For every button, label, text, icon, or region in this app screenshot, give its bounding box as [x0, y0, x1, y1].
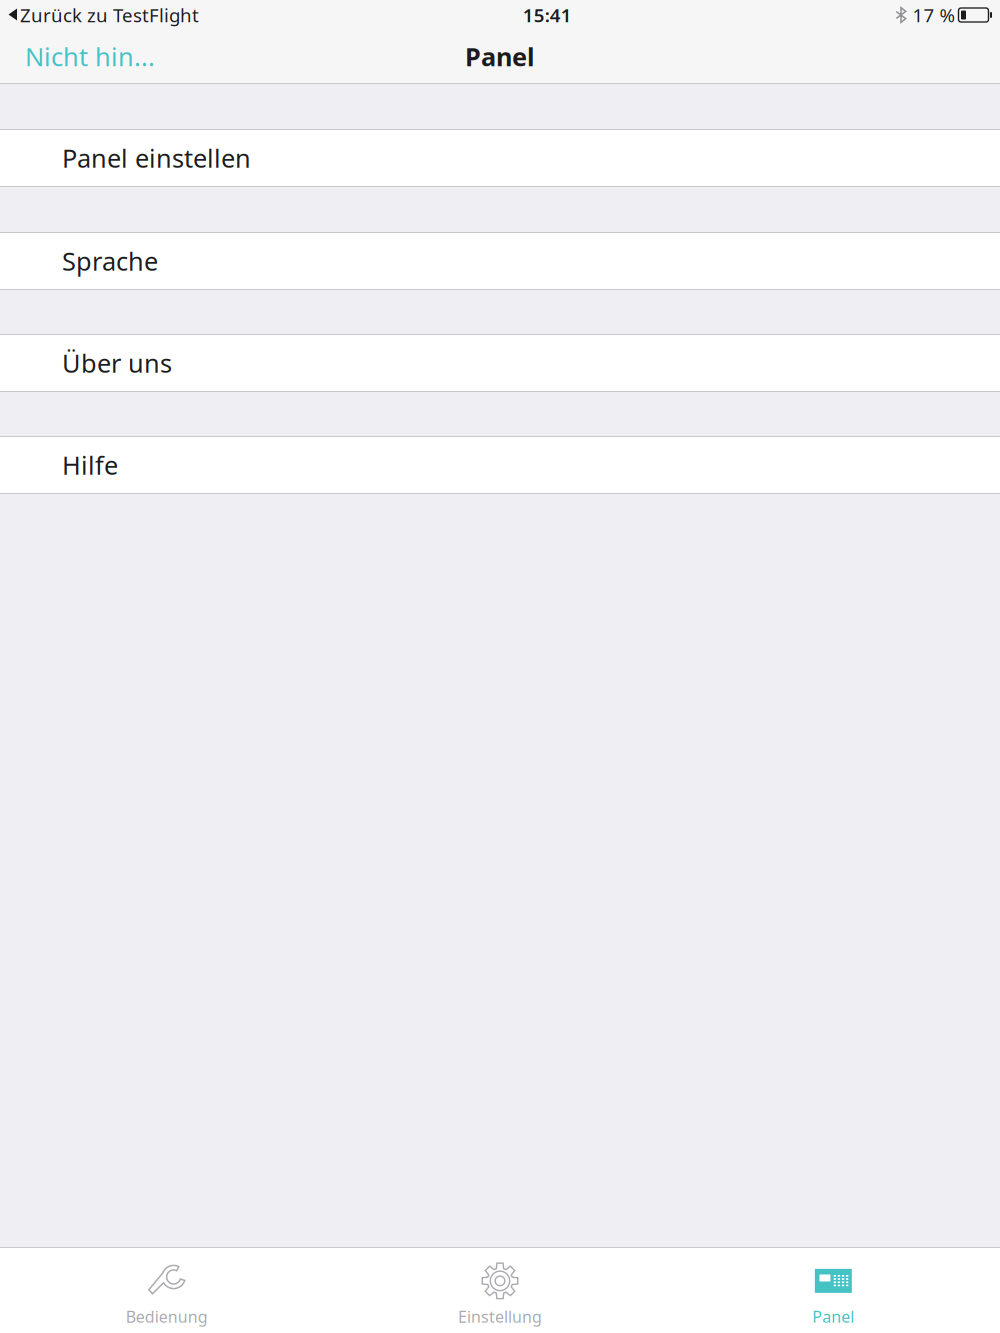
- button[interactable]: Nicht hin...: [0, 30, 167, 83]
- staticText: Panel einstellen: [62, 141, 251, 175]
- button[interactable]: Panel einstellen: [0, 129, 1000, 187]
- staticText: Sprache: [62, 244, 158, 278]
- staticText: 15:41: [523, 3, 572, 27]
- button[interactable]: Zurück zu TestFlight: [0, 0, 199, 30]
- button[interactable]: Über uns: [0, 334, 1000, 392]
- staticText: Einstellung: [458, 1306, 542, 1327]
- staticText: Zurück zu TestFlight: [20, 3, 199, 27]
- button[interactable]: Sprache: [0, 232, 1000, 290]
- staticText: Über uns: [62, 346, 172, 380]
- button[interactable]: Einstellung: [333, 1248, 667, 1333]
- staticText: Bedienung: [126, 1306, 208, 1327]
- staticText: Panel: [812, 1306, 854, 1327]
- staticText: Panel: [465, 40, 535, 73]
- staticText: Nicht hin...: [25, 40, 155, 73]
- staticText: Hilfe: [62, 448, 118, 482]
- button[interactable]: Hilfe: [0, 436, 1000, 494]
- staticText: 17 %: [912, 3, 955, 27]
- button[interactable]: Bedienung: [0, 1248, 333, 1333]
- button[interactable]: Panel: [667, 1248, 1000, 1333]
